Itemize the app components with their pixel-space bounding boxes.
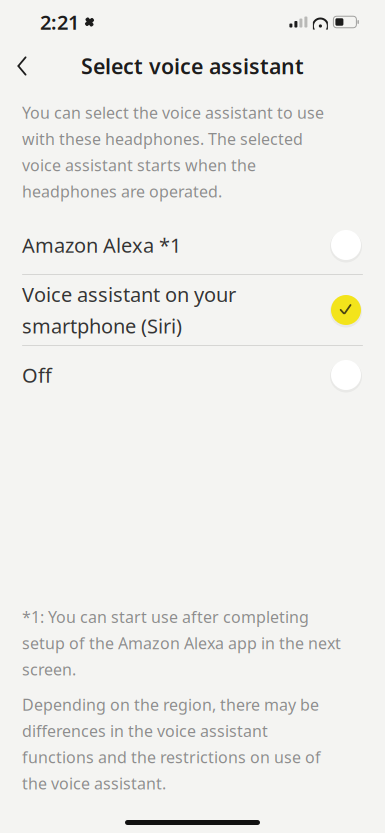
staticText: Off (22, 362, 52, 388)
button[interactable]: Voice assistant on your smartphone (Siri… (0, 275, 385, 345)
staticText: *1: You can start use after completing s… (22, 606, 341, 680)
button[interactable]: Off (0, 346, 385, 404)
staticText: Depending on the region, there may be di… (22, 694, 321, 794)
staticText: You can select the voice assistant to us… (22, 102, 324, 202)
button[interactable]: Amazon Alexa *1 (0, 216, 385, 274)
staticText: Amazon Alexa *1 (22, 232, 181, 258)
staticText: Voice assistant on your smartphone (Siri… (22, 281, 236, 339)
staticText: 2:21 (40, 9, 79, 35)
staticText: Select voice assistant (81, 52, 304, 80)
button[interactable]: Back (0, 44, 44, 88)
